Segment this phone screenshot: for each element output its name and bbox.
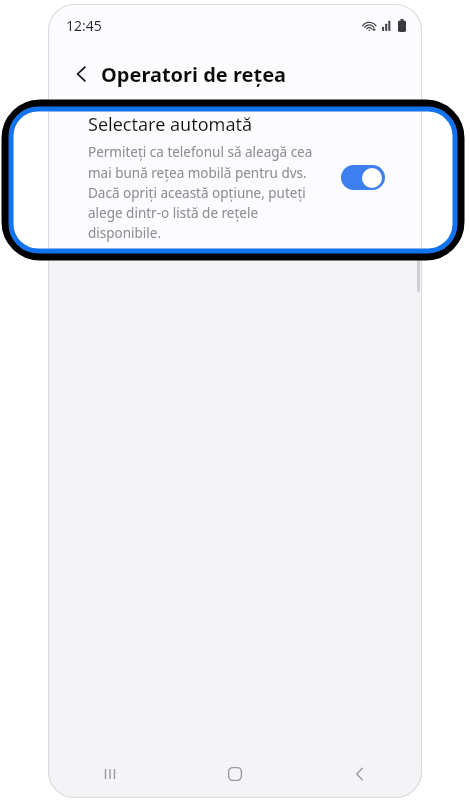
button[interactable]: Home [172,750,297,798]
button[interactable]: Recents [48,750,172,798]
staticText: Selectare automată [88,112,253,137]
button[interactable]: Back [64,56,100,92]
button[interactable]: Automatic selection toggle [340,162,386,192]
staticText: Operatori de rețea [101,61,287,88]
button[interactable]: Back [297,750,422,798]
staticText: 12:45 [66,16,102,35]
button[interactable]: Selectare automată [48,102,422,252]
staticText: Permiteți ca telefonul să aleagă cea mai… [88,143,328,242]
